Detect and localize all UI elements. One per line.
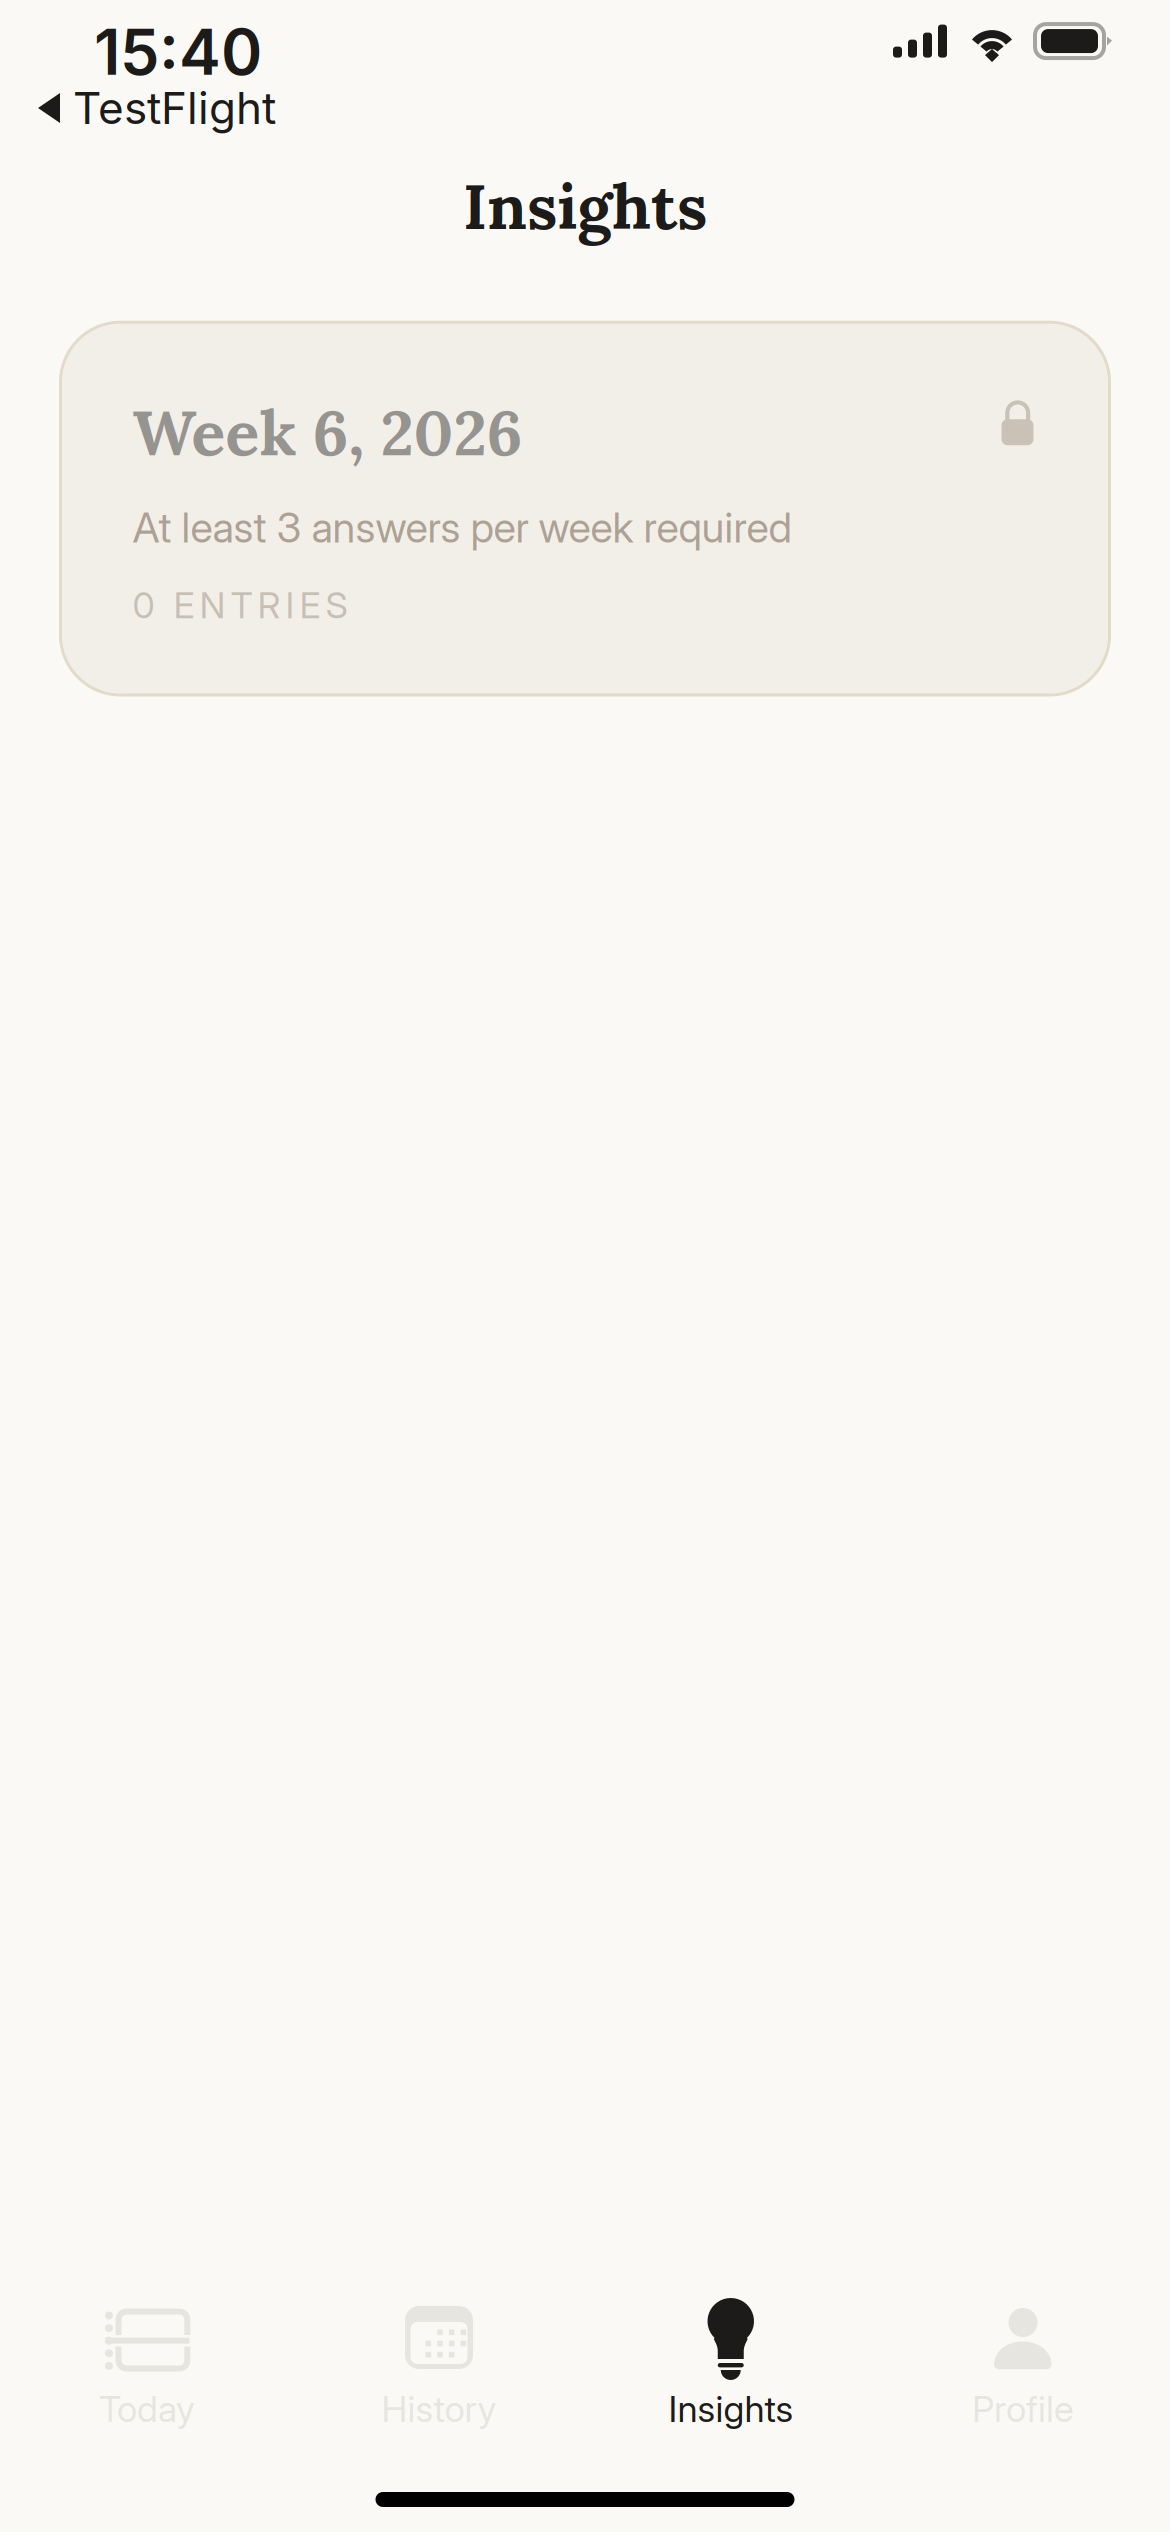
staticText: Today (99, 2387, 195, 2431)
staticText: Insights (668, 2387, 793, 2431)
staticText: Week 6, 2026 (132, 392, 522, 472)
button[interactable]: Profile (877, 2285, 1169, 2435)
staticText: Profile (972, 2387, 1074, 2431)
button[interactable]: Week 6, 2026 (60, 322, 1109, 695)
staticText: 0 ENTRIES (132, 583, 347, 627)
button[interactable]: Today (1, 2285, 293, 2435)
staticText: 15:40 (94, 14, 262, 90)
button[interactable]: TestFlight (0, 84, 1170, 132)
staticText: At least 3 answers per week required (132, 502, 791, 552)
staticText: History (381, 2387, 496, 2431)
staticText: TestFlight (73, 81, 276, 135)
button[interactable]: Insights (585, 2285, 877, 2435)
staticText: Insights (463, 166, 707, 246)
button[interactable]: History (293, 2285, 585, 2435)
